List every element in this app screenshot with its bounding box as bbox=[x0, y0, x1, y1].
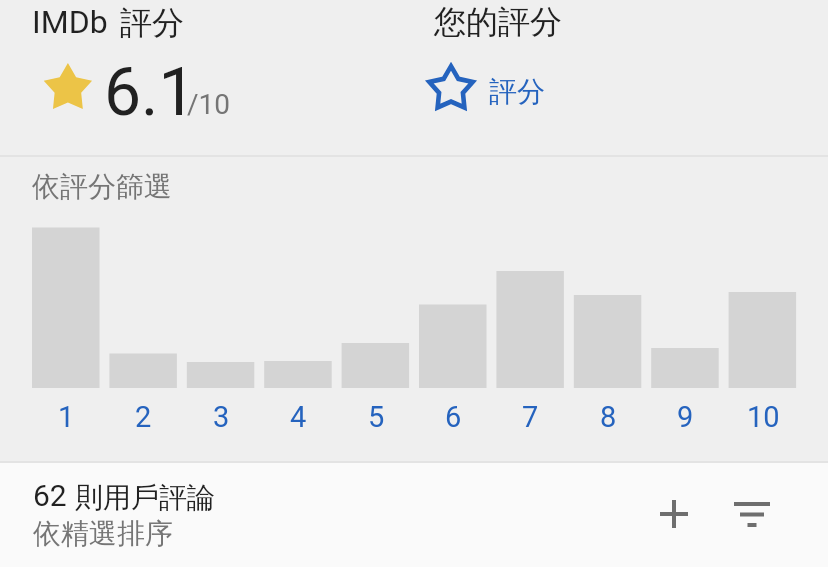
button[interactable]: 5 bbox=[342, 210, 410, 435]
button[interactable]: 62 bbox=[0, 463, 420, 567]
staticText: 2 bbox=[135, 400, 152, 434]
staticText: 1 bbox=[58, 400, 75, 434]
staticText: 您的評分 bbox=[434, 2, 562, 42]
staticText: 5 bbox=[368, 400, 385, 434]
staticText: 評分 bbox=[489, 74, 545, 109]
staticText: 6 bbox=[445, 400, 462, 434]
staticText: 3 bbox=[213, 400, 230, 434]
button[interactable]: 2 bbox=[109, 210, 177, 435]
button[interactable]: 您的評分 bbox=[424, 0, 624, 148]
staticText: 8 bbox=[600, 400, 617, 434]
staticText: 則用戶評論 bbox=[75, 480, 215, 515]
staticText: /10 bbox=[187, 88, 231, 121]
staticText: 依精選排序 bbox=[33, 516, 173, 551]
button[interactable]: 7 bbox=[496, 210, 564, 435]
button[interactable]: 4 bbox=[264, 210, 332, 435]
staticText: 依評分篩選 bbox=[32, 169, 172, 204]
staticText: 6.1 bbox=[104, 54, 196, 131]
button[interactable]: 9 bbox=[651, 210, 719, 435]
staticText: IMDb bbox=[32, 3, 108, 41]
button[interactable]: 8 bbox=[574, 210, 642, 435]
button[interactable]: IMDb bbox=[24, 0, 274, 148]
staticText: 評分 bbox=[120, 3, 184, 43]
button[interactable]: 10 bbox=[729, 210, 797, 435]
staticText: 10 bbox=[747, 400, 780, 434]
staticText: 9 bbox=[677, 400, 694, 434]
button[interactable]: 6 bbox=[419, 210, 487, 435]
staticText: 7 bbox=[522, 400, 539, 434]
button[interactable]: 3 bbox=[187, 210, 255, 435]
button[interactable]: Write a review bbox=[650, 490, 698, 538]
button[interactable]: 1 bbox=[32, 210, 100, 435]
button[interactable]: Sort reviews bbox=[728, 490, 776, 538]
staticText: 4 bbox=[290, 400, 307, 434]
staticText: 62 bbox=[33, 478, 67, 513]
